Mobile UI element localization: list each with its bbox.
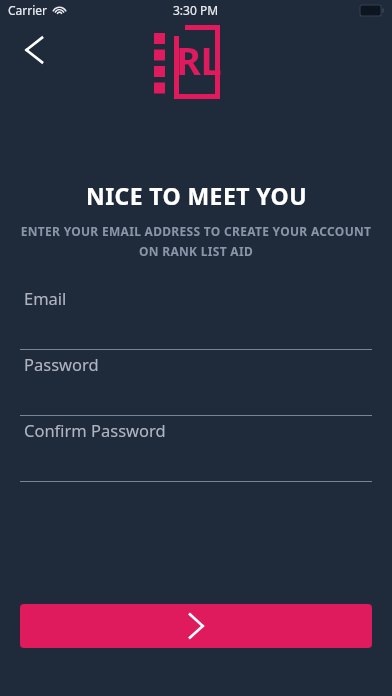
staticText: 3:30 PM <box>173 2 219 18</box>
staticText: Confirm Password <box>24 419 166 441</box>
button[interactable]: Password <box>0 350 392 415</box>
staticText: RL <box>176 34 222 86</box>
staticText: NICE TO MEET YOU <box>86 180 307 211</box>
button[interactable]: Confirm Password <box>0 416 392 481</box>
staticText: Password <box>24 353 99 375</box>
button[interactable]: Back <box>12 28 56 72</box>
button[interactable]: Continue <box>20 604 372 648</box>
staticText: ENTER YOUR EMAIL ADDRESS TO CREATE YOUR … <box>8 223 384 260</box>
staticText: Carrier <box>8 2 48 18</box>
staticText: Email <box>24 287 67 309</box>
button[interactable]: Email <box>0 284 392 349</box>
